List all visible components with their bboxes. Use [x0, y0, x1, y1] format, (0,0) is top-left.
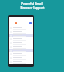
staticText: Browser Support — [20, 6, 45, 10]
button[interactable] — [9, 52, 33, 56]
staticText: Powerful Email — [21, 2, 43, 6]
button[interactable] — [9, 26, 33, 30]
button[interactable] — [9, 41, 33, 45]
button[interactable]: Compose — [15, 22, 17, 24]
button[interactable] — [9, 34, 33, 37]
button[interactable] — [9, 49, 33, 52]
button[interactable] — [9, 45, 33, 49]
button[interactable] — [9, 37, 33, 41]
button[interactable] — [9, 56, 33, 60]
button[interactable] — [9, 60, 33, 64]
button[interactable]: Menu — [29, 22, 32, 24]
button[interactable] — [9, 30, 33, 34]
